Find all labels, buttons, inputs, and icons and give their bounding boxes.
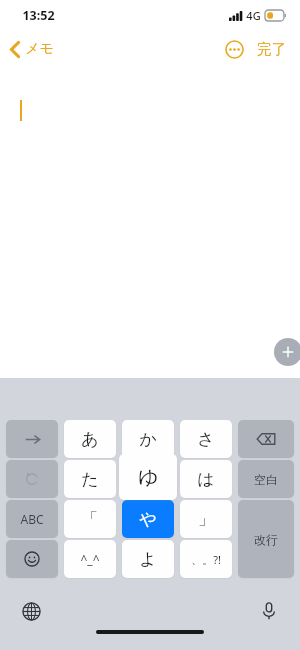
staticText: あ bbox=[81, 429, 99, 450]
button[interactable]: 」 bbox=[180, 500, 232, 538]
staticText: ^_^ bbox=[80, 551, 100, 567]
button[interactable]: よ bbox=[122, 540, 174, 578]
button[interactable]: は bbox=[180, 460, 232, 498]
staticText: 」 bbox=[198, 509, 214, 529]
button[interactable]: More options bbox=[222, 37, 246, 61]
button[interactable]: Dictation bbox=[255, 597, 283, 625]
staticText: よ bbox=[139, 549, 157, 570]
staticText: ゆ bbox=[138, 465, 159, 490]
button[interactable]: Emoji bbox=[6, 540, 58, 578]
staticText: 4G bbox=[246, 8, 261, 23]
button[interactable]: Add note bbox=[274, 338, 300, 366]
staticText: 、。?! bbox=[191, 552, 221, 567]
staticText: メモ bbox=[25, 40, 54, 58]
staticText: た bbox=[81, 469, 99, 490]
button[interactable]: 完了 bbox=[255, 36, 288, 62]
button[interactable]: た bbox=[64, 460, 116, 498]
staticText: か bbox=[139, 429, 157, 450]
staticText: 13:52 bbox=[22, 7, 55, 24]
button[interactable]: 「 bbox=[64, 500, 116, 538]
button[interactable]: ABC bbox=[6, 500, 58, 538]
button[interactable]: あ bbox=[64, 420, 116, 458]
button[interactable]: Next candidate bbox=[6, 420, 58, 458]
button[interactable]: ゆ bbox=[119, 454, 177, 500]
button[interactable]: ^_^ bbox=[64, 540, 116, 578]
staticText: ABC bbox=[20, 511, 44, 527]
button[interactable]: や bbox=[122, 500, 174, 538]
button[interactable]: さ bbox=[180, 420, 232, 458]
staticText: や bbox=[139, 509, 157, 530]
button[interactable]: Switch keyboard bbox=[17, 597, 45, 625]
button[interactable]: 空白 bbox=[238, 460, 294, 498]
staticText: は bbox=[197, 469, 215, 490]
button[interactable]: Undo bbox=[6, 460, 58, 498]
staticText: 空白 bbox=[254, 472, 278, 487]
button[interactable]: 改行 bbox=[238, 500, 294, 578]
staticText: 「 bbox=[82, 509, 98, 529]
staticText: 改行 bbox=[254, 532, 278, 547]
button[interactable]: メモ bbox=[0, 36, 62, 62]
staticText: さ bbox=[197, 429, 215, 450]
button[interactable]: Delete bbox=[238, 420, 294, 458]
button[interactable]: か bbox=[122, 420, 174, 458]
button[interactable]: 、。?! bbox=[180, 540, 232, 578]
staticText: 完了 bbox=[257, 40, 286, 58]
